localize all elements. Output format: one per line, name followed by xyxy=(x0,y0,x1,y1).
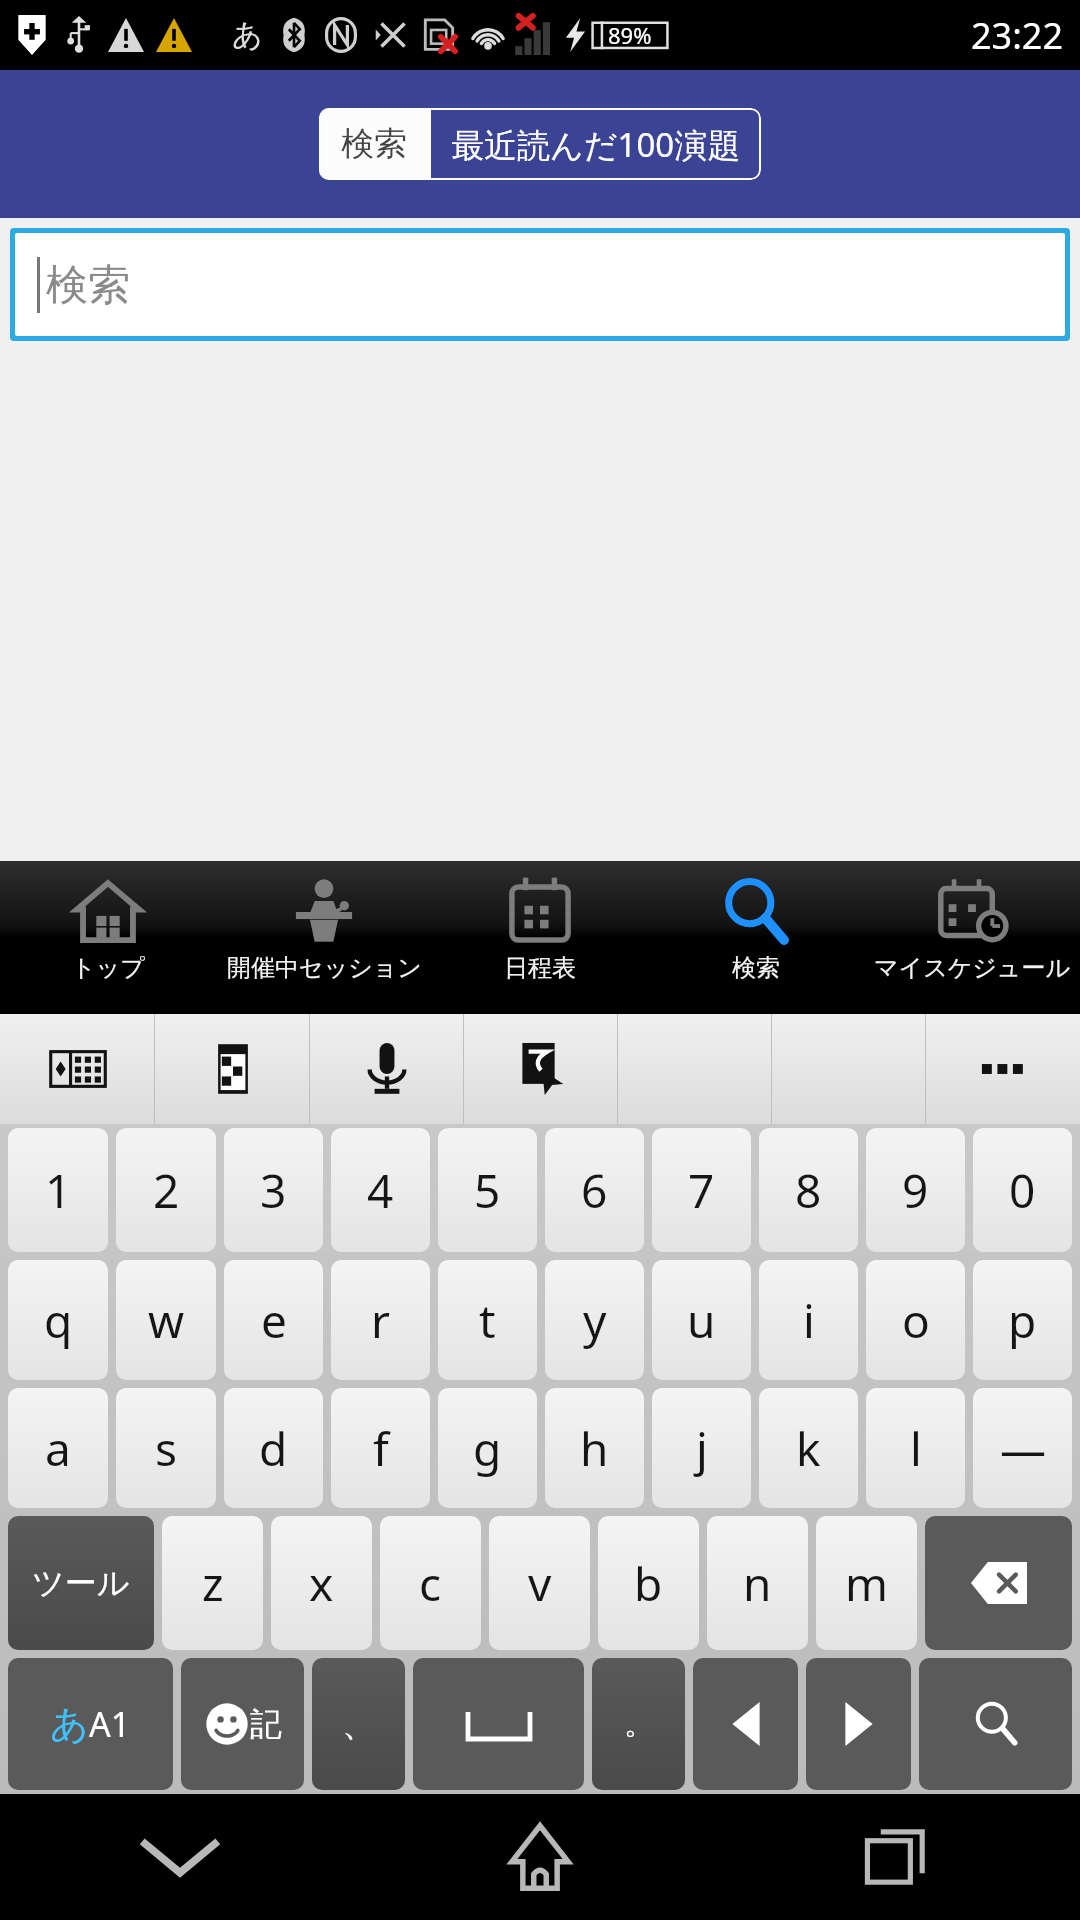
button[interactable]: Recents xyxy=(720,1794,1080,1920)
staticText: 検索 xyxy=(46,259,130,312)
button[interactable]: w xyxy=(116,1260,216,1380)
staticText: q xyxy=(44,1289,73,1352)
button[interactable]: d xyxy=(224,1388,323,1508)
staticText: l xyxy=(910,1417,922,1480)
button[interactable]: o xyxy=(866,1260,965,1380)
staticText: x xyxy=(309,1552,334,1615)
button[interactable]: y xyxy=(545,1260,644,1380)
button[interactable]: 日程表 xyxy=(432,861,648,1014)
button[interactable]: tool 5 xyxy=(772,1014,926,1124)
button[interactable]: 検索 xyxy=(319,108,429,180)
button[interactable]: r xyxy=(331,1260,430,1380)
button[interactable]: j xyxy=(652,1388,751,1508)
staticText: 4 xyxy=(367,1159,394,1222)
staticText: 3 xyxy=(260,1159,287,1222)
staticText: 日程表 xyxy=(504,953,576,983)
staticText: 最近読んだ100演題 xyxy=(451,122,741,167)
button[interactable]: マイスケジュール xyxy=(864,861,1080,1014)
button[interactable]: Search xyxy=(919,1658,1072,1790)
button[interactable]: — xyxy=(973,1388,1072,1508)
button[interactable]: 7 xyxy=(652,1128,751,1252)
staticText: e xyxy=(261,1289,287,1352)
staticText: j xyxy=(696,1417,708,1480)
button[interactable]: x xyxy=(271,1516,372,1650)
button[interactable]: 開催中セッション xyxy=(216,861,432,1014)
button[interactable]: Backspace xyxy=(925,1516,1072,1650)
staticText: v xyxy=(528,1552,552,1615)
staticText: 7 xyxy=(688,1159,715,1222)
button[interactable]: 検索 xyxy=(15,233,1065,336)
staticText: 2 xyxy=(153,1159,180,1222)
staticText: 検索 xyxy=(341,123,407,165)
button[interactable]: z xyxy=(162,1516,263,1650)
button[interactable]: トップ xyxy=(0,861,216,1014)
button[interactable]: 2 xyxy=(116,1128,216,1252)
button[interactable]: t xyxy=(438,1260,537,1380)
button[interactable]: q xyxy=(8,1260,108,1380)
button[interactable]: 4 xyxy=(331,1128,430,1252)
button[interactable]: 検索 xyxy=(648,861,864,1014)
staticText: 1 xyxy=(45,1159,72,1222)
button[interactable]: Space xyxy=(413,1658,584,1790)
button[interactable]: 1 xyxy=(8,1128,108,1252)
staticText: あ xyxy=(50,1700,89,1748)
staticText: w xyxy=(148,1289,185,1352)
staticText: 8 xyxy=(795,1159,822,1222)
button[interactable]: 、 xyxy=(312,1658,405,1790)
button[interactable]: p xyxy=(973,1260,1072,1380)
button[interactable]: m xyxy=(816,1516,917,1650)
button[interactable]: h xyxy=(545,1388,644,1508)
button[interactable]: 。 xyxy=(592,1658,685,1790)
button[interactable]: 9 xyxy=(866,1128,965,1252)
button[interactable]: k xyxy=(759,1388,858,1508)
staticText: 検索 xyxy=(732,953,780,983)
staticText: 、 xyxy=(342,1703,376,1746)
button[interactable]: c xyxy=(380,1516,481,1650)
button[interactable]: Home xyxy=(360,1794,720,1920)
staticText: 0 xyxy=(1009,1159,1036,1222)
button[interactable]: tool 0 xyxy=(0,1014,155,1124)
staticText: 9 xyxy=(902,1159,929,1222)
button[interactable]: b xyxy=(598,1516,699,1650)
button[interactable]: u xyxy=(652,1260,751,1380)
button[interactable]: Right xyxy=(806,1658,911,1790)
button[interactable]: g xyxy=(438,1388,537,1508)
button[interactable]: 8 xyxy=(759,1128,858,1252)
staticText: A1 xyxy=(89,1701,131,1747)
button[interactable]: i xyxy=(759,1260,858,1380)
button[interactable]: a xyxy=(8,1388,108,1508)
button[interactable]: 5 xyxy=(438,1128,537,1252)
staticText: i xyxy=(803,1289,815,1352)
staticText: b xyxy=(634,1552,663,1615)
staticText: o xyxy=(902,1289,930,1352)
staticText: 開催中セッション xyxy=(227,953,422,983)
button[interactable]: tool 1 xyxy=(155,1014,310,1124)
button[interactable]: 3 xyxy=(224,1128,323,1252)
staticText: d xyxy=(259,1417,288,1480)
button[interactable]: 0 xyxy=(973,1128,1072,1252)
button[interactable]: Input mode xyxy=(8,1658,173,1790)
button[interactable]: n xyxy=(707,1516,808,1650)
staticText: あ xyxy=(232,16,263,54)
button[interactable]: s xyxy=(116,1388,216,1508)
button[interactable]: Emoji xyxy=(181,1658,304,1790)
button[interactable]: 6 xyxy=(545,1128,644,1252)
button[interactable]: tool 4 xyxy=(618,1014,772,1124)
button[interactable]: ツール xyxy=(8,1516,154,1650)
button[interactable]: f xyxy=(331,1388,430,1508)
staticText: 。 xyxy=(624,1705,654,1743)
button[interactable]: v xyxy=(489,1516,590,1650)
staticText: ツール xyxy=(32,1563,130,1603)
staticText: c xyxy=(419,1552,442,1615)
button[interactable]: Left xyxy=(693,1658,798,1790)
button[interactable]: l xyxy=(866,1388,965,1508)
staticText: u xyxy=(687,1289,716,1352)
button[interactable]: tool 6 xyxy=(926,1014,1080,1124)
button[interactable]: 最近読んだ100演題 xyxy=(431,108,761,180)
staticText: z xyxy=(202,1552,224,1615)
button[interactable]: e xyxy=(224,1260,323,1380)
button[interactable]: tool 3 xyxy=(464,1014,618,1124)
staticText: s xyxy=(155,1417,178,1480)
button[interactable]: Back xyxy=(0,1794,360,1920)
button[interactable]: tool 2 xyxy=(310,1014,464,1124)
